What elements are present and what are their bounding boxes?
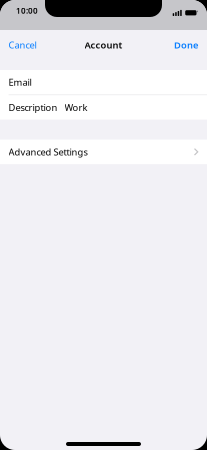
button[interactable]: Cancel	[0, 34, 37, 56]
staticText: 10:00	[16, 5, 38, 16]
staticText: Advanced Settings	[9, 146, 88, 158]
staticText: Done	[174, 39, 198, 51]
staticText: Account	[84, 39, 122, 51]
button[interactable]: Email	[0, 70, 207, 94]
staticText: Cancel	[9, 39, 37, 51]
staticText: Work	[65, 101, 88, 114]
button[interactable]: Done	[174, 34, 207, 56]
button[interactable]: Advanced Settings	[0, 140, 207, 164]
staticText: Email	[9, 76, 32, 88]
button[interactable]: Description	[0, 95, 207, 120]
staticText: Description	[9, 101, 58, 114]
